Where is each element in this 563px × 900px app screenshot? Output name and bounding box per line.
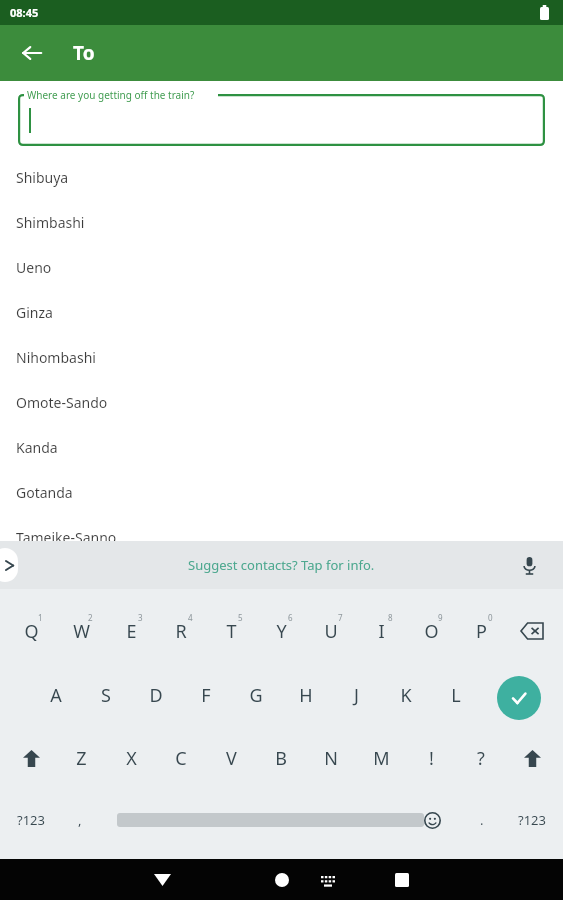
button[interactable]: ! [406,731,456,785]
staticText: N [324,746,338,771]
button[interactable]: D [131,668,181,722]
staticText: I [378,619,385,644]
button[interactable]: Q [6,604,56,658]
button[interactable]: Recents [380,859,424,900]
staticText: 7 [338,612,343,623]
button[interactable]: Voice input [513,549,545,581]
staticText: Shibuya [16,168,69,187]
button[interactable]: M [356,731,406,785]
staticText: M [373,746,390,771]
button[interactable]: O [406,604,456,658]
staticText: Shimbashi [16,213,85,232]
staticText: T [226,619,237,644]
button[interactable]: E [106,604,156,658]
button[interactable]: F [181,668,231,722]
staticText: Ueno [16,258,52,277]
button[interactable]: Space [117,796,424,844]
button[interactable]: Enter [497,676,541,720]
button[interactable]: Back [140,859,184,900]
button[interactable]: I [356,604,406,658]
staticText: 8 [388,612,393,623]
staticText: 0 [488,612,493,623]
button[interactable]: Y [256,604,306,658]
button[interactable]: Z [56,731,106,785]
staticText: P [476,619,487,644]
button[interactable]: . [462,796,502,844]
staticText: S [101,683,111,708]
staticText: Z [76,746,87,771]
button[interactable]: , [58,796,102,844]
button[interactable]: Emoji [412,796,452,844]
button[interactable]: Backspace [507,604,557,658]
button[interactable]: Shibuya [0,155,563,200]
button[interactable]: X [106,731,156,785]
staticText: E [126,619,137,644]
button[interactable]: A [31,668,81,722]
button[interactable]: Gotanda [0,470,563,515]
button[interactable]: Nihombashi [0,335,563,380]
button[interactable]: K [381,668,431,722]
staticText: 3 [138,612,143,623]
staticText: ?123 [518,811,546,829]
staticText: 08:45 [10,5,39,20]
button[interactable]: H [281,668,331,722]
button[interactable]: G [231,668,281,722]
button[interactable]: Switch keyboard [312,864,344,896]
button[interactable] [18,94,545,146]
staticText: X [126,746,137,771]
button[interactable]: Omote-Sando [0,380,563,425]
button[interactable]: Shift [6,731,56,785]
button[interactable]: U [306,604,356,658]
button[interactable]: P [456,604,506,658]
button[interactable]: L [431,668,481,722]
button[interactable]: Ginza [0,290,563,335]
staticText: K [400,683,412,708]
button[interactable]: J [331,668,381,722]
button[interactable]: Tameike-Sanno [0,515,563,560]
staticText: Y [276,619,287,644]
staticText: 6 [288,612,293,623]
staticText: D [149,683,163,708]
button[interactable]: Back [10,31,54,75]
staticText: W [73,619,90,644]
button[interactable]: C [156,731,206,785]
button[interactable]: T [206,604,256,658]
button[interactable]: Kanda [0,425,563,470]
button[interactable]: B [256,731,306,785]
button[interactable]: ?123 [6,796,56,844]
staticText: J [354,683,359,708]
button[interactable]: V [206,731,256,785]
button[interactable]: Expand [0,548,18,582]
staticText: . [480,811,484,829]
staticText: Where are you getting off the train? [27,88,195,102]
staticText: ? [477,746,485,771]
staticText: Tameike-Sanno [16,528,117,547]
staticText: Suggest contacts? Tap for info. [188,556,375,574]
button[interactable]: ? [456,731,506,785]
staticText: C [175,746,187,771]
staticText: 5 [238,612,243,623]
button[interactable]: Suggest contacts? Tap for info. [188,556,375,574]
staticText: ?123 [17,811,45,829]
button[interactable]: S [81,668,131,722]
staticText: 1 [38,612,43,623]
staticText: B [275,746,287,771]
staticText: H [299,683,313,708]
staticText: Nihombashi [16,348,96,367]
staticText: L [451,683,461,708]
staticText: O [424,619,439,644]
button[interactable]: Ueno [0,245,563,290]
staticText: Omote-Sando [16,393,108,412]
button[interactable]: N [306,731,356,785]
button[interactable]: Shift [507,731,557,785]
staticText: R [175,619,187,644]
button[interactable]: ?123 [506,796,558,844]
button[interactable]: R [156,604,206,658]
button[interactable]: Home [260,859,304,900]
staticText: 4 [188,612,193,623]
button[interactable]: Shimbashi [0,200,563,245]
staticText: 9 [438,612,443,623]
staticText: F [201,683,211,708]
staticText: Kanda [16,438,58,457]
button[interactable]: W [56,604,106,658]
